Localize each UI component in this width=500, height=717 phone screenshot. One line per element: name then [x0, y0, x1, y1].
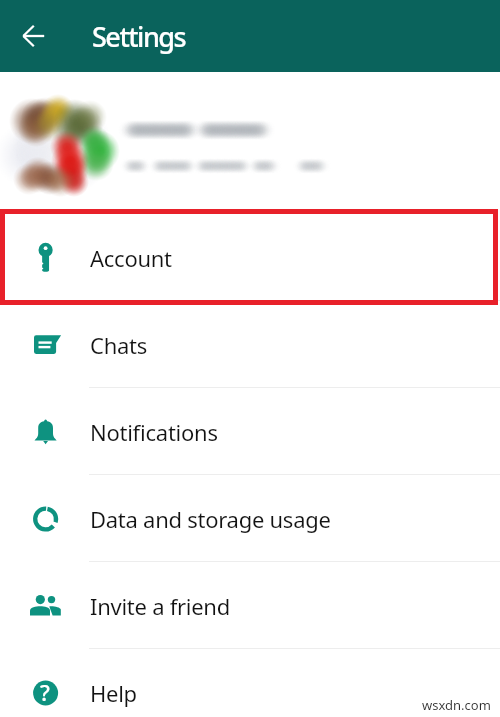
staticText: Settings	[92, 18, 186, 55]
staticText: Data and storage usage	[90, 504, 331, 534]
button[interactable]: Invite a friend	[0, 562, 500, 649]
staticText: Chats	[90, 330, 148, 360]
staticText: Account	[90, 243, 172, 273]
button[interactable]: Notifications	[0, 388, 500, 475]
button[interactable]: Back	[15, 17, 53, 55]
button[interactable]: Account	[0, 214, 500, 301]
button[interactable]: ?	[0, 649, 500, 717]
staticText: Invite a friend	[90, 591, 230, 621]
button[interactable]: Data and storage usage	[0, 475, 500, 562]
staticText: Help	[90, 678, 137, 708]
staticText: Notifications	[90, 417, 218, 447]
button[interactable]: Chats	[0, 301, 500, 388]
staticText: wsxdn.com	[422, 696, 491, 714]
staticText: ?	[40, 677, 50, 707]
button[interactable]	[0, 72, 500, 214]
